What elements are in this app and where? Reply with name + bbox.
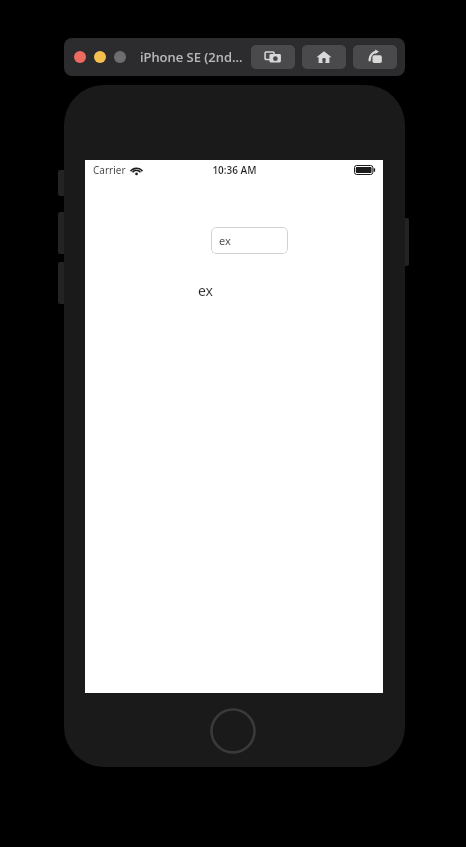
button[interactable]: Screenshot bbox=[251, 45, 295, 69]
button[interactable]: Home button bbox=[210, 708, 256, 754]
button[interactable]: Close bbox=[74, 51, 86, 63]
button[interactable]: Home bbox=[302, 45, 346, 69]
button[interactable]: Share bbox=[353, 45, 397, 69]
other: Wi-Fi bbox=[130, 165, 143, 175]
staticText: ex bbox=[198, 281, 214, 300]
staticText: iPhone SE (2nd… bbox=[140, 48, 243, 66]
staticText: Carrier bbox=[93, 163, 126, 177]
staticText: 10:36 AM bbox=[212, 163, 257, 177]
button[interactable]: Minimize bbox=[94, 51, 106, 63]
button[interactable]: Zoom bbox=[114, 51, 126, 63]
button[interactable]: ex bbox=[211, 227, 288, 254]
staticText: ex bbox=[219, 233, 231, 248]
other: Battery full bbox=[354, 165, 376, 175]
